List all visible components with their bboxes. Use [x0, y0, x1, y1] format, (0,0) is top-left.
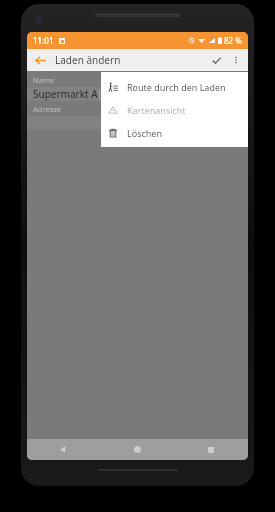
staticText: Adresse	[33, 104, 61, 114]
staticText: Name	[33, 75, 55, 85]
staticText: 11:01	[33, 35, 54, 46]
staticText: Löschen	[127, 127, 162, 139]
button[interactable]: Übersicht	[174, 439, 248, 460]
button[interactable]: Zurück	[27, 439, 100, 460]
button[interactable]: Speichern	[206, 50, 226, 70]
button[interactable]: Löschen	[101, 121, 248, 144]
button[interactable]: Startbildschirm	[100, 439, 174, 460]
staticText: 82 %	[224, 35, 243, 46]
button[interactable]: Weitere Optionen	[226, 50, 246, 70]
staticText: Kartenansicht	[127, 104, 186, 116]
button[interactable]: Route durch den Laden	[101, 75, 248, 98]
staticText: Supermarkt A	[33, 87, 98, 101]
staticText: Laden ändern	[55, 53, 121, 67]
staticText: Route durch den Laden	[127, 81, 226, 93]
button[interactable]: Zurück	[30, 50, 50, 70]
button: Kartenansicht	[101, 98, 248, 121]
